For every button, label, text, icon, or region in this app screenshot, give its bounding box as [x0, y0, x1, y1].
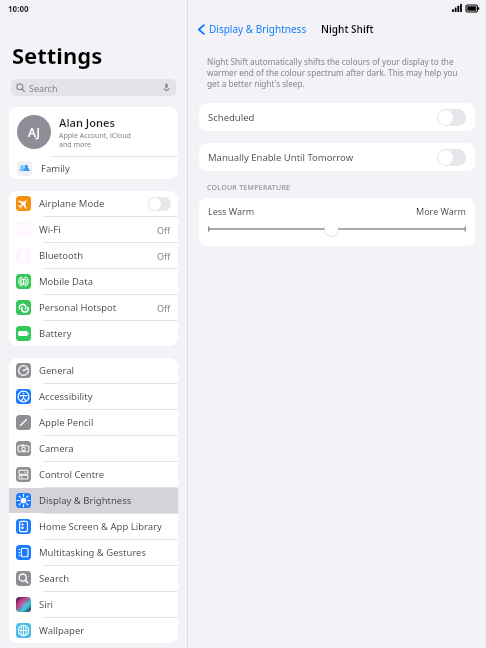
staticText: Night Shift	[321, 22, 374, 36]
button[interactable]: Multitasking & Gestures	[9, 540, 178, 565]
staticText: Multitasking & Gestures	[39, 546, 147, 559]
button[interactable]: Search	[9, 566, 178, 591]
button[interactable]: General	[9, 358, 178, 383]
button[interactable]: Camera	[9, 436, 178, 461]
staticText: Wallpaper	[39, 624, 85, 637]
staticText: Off	[157, 250, 171, 262]
button[interactable]: Display & Brightness	[196, 19, 309, 39]
button[interactable]: Family	[9, 157, 178, 179]
button[interactable]: Accessibility	[9, 384, 178, 409]
button[interactable]: Mobile Data	[9, 269, 178, 294]
staticText: More Warm	[416, 205, 466, 217]
button[interactable]: Manually enable toggle	[437, 149, 466, 166]
staticText: Siri	[39, 598, 54, 611]
staticText: Camera	[39, 442, 74, 455]
staticText: Manually Enable Until Tomorrow	[208, 151, 354, 164]
staticText: AJ	[28, 124, 40, 140]
button[interactable]: Airplane Mode	[9, 191, 178, 216]
staticText: Search	[39, 572, 70, 585]
staticText: Personal Hotspot	[39, 301, 117, 314]
button[interactable]: AJ	[9, 107, 178, 156]
button[interactable]: Scheduled	[199, 103, 475, 131]
staticText: Settings	[12, 40, 103, 70]
button[interactable]: Bluetooth	[9, 243, 178, 268]
button[interactable]: Home Screen & App Library	[9, 514, 178, 539]
button[interactable]: Wallpaper	[9, 618, 178, 643]
button[interactable]: Airplane Mode toggle	[148, 197, 171, 211]
staticText: Family	[41, 162, 70, 175]
staticText: Alan Jones	[59, 115, 115, 130]
staticText: Off	[157, 302, 171, 314]
button[interactable]: Scheduled toggle	[437, 109, 466, 126]
staticText: Battery	[39, 327, 72, 340]
staticText: Accessibility	[39, 390, 93, 403]
staticText: Control Centre	[39, 468, 105, 481]
staticText: Airplane Mode	[39, 197, 105, 210]
staticText: Display & Brightness	[209, 22, 307, 36]
button[interactable]: Display & Brightness	[9, 488, 178, 513]
staticText: Search	[29, 82, 58, 94]
button[interactable]: Manually Enable Until Tomorrow	[199, 143, 475, 171]
staticText: Wi-Fi	[39, 223, 61, 236]
button[interactable]: Personal Hotspot	[9, 295, 178, 320]
button[interactable]: Apple Pencil	[9, 410, 178, 435]
staticText: Mobile Data	[39, 275, 93, 288]
staticText: Less Warm	[208, 205, 255, 217]
staticText: Home Screen & App Library	[39, 520, 162, 533]
button[interactable]: Control Centre	[9, 462, 178, 487]
button[interactable]: Wi-Fi	[9, 217, 178, 242]
button[interactable]: Colour temperature slider	[208, 221, 466, 237]
button[interactable]: Search	[11, 79, 176, 96]
button[interactable]: Siri	[9, 592, 178, 617]
staticText: Night Shift automatically shifts the col…	[207, 56, 468, 89]
staticText: Bluetooth	[39, 249, 84, 262]
staticText: 10:00	[8, 3, 29, 14]
staticText: Off	[157, 224, 171, 236]
staticText: Display & Brightness	[39, 494, 132, 507]
staticText: Apple Account, iCloud and more	[59, 131, 131, 149]
staticText: Scheduled	[208, 111, 255, 124]
button[interactable]: Battery	[9, 321, 178, 346]
staticText: COLOUR TEMPERATURE	[207, 183, 291, 193]
staticText: Apple Pencil	[39, 416, 94, 429]
staticText: General	[39, 364, 75, 377]
